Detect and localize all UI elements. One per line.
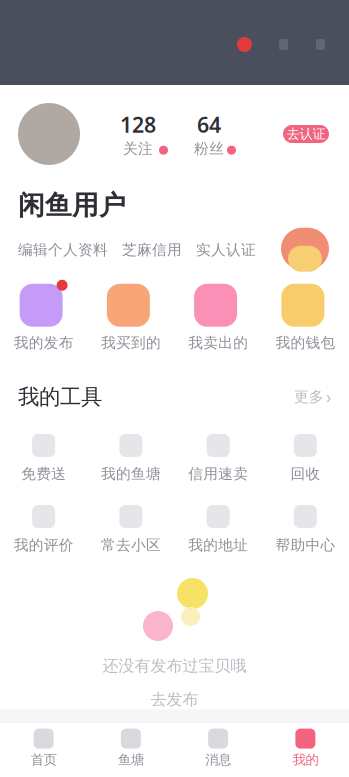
staticText: 去发布: [150, 690, 198, 709]
staticText: 常去小区: [101, 536, 161, 554]
button[interactable]: 首页: [0, 729, 87, 768]
staticText: 实人认证: [196, 241, 256, 259]
staticText: 粉丝: [194, 140, 224, 158]
staticText: 128: [120, 110, 156, 139]
button[interactable]: Profile photo: [18, 103, 80, 165]
button[interactable]: 去认证: [283, 125, 329, 143]
staticText: 信用速卖: [188, 465, 248, 483]
button[interactable]: 回收: [262, 434, 349, 483]
button[interactable]: 帮助中心: [262, 505, 349, 554]
button[interactable]: 128: [120, 110, 168, 158]
staticText: 我的: [292, 752, 318, 768]
button[interactable]: 我的发布: [0, 280, 87, 352]
staticText: 鱼塘: [118, 752, 144, 768]
button[interactable]: 常去小区: [87, 505, 174, 554]
staticText: 我的钱包: [275, 334, 335, 352]
button[interactable]: 我的鱼塘: [87, 434, 174, 483]
button[interactable]: 去发布: [150, 676, 198, 709]
button[interactable]: 我的评价: [0, 505, 87, 554]
staticText: 我的地址: [188, 536, 248, 554]
button[interactable]: 64: [194, 110, 236, 158]
staticText: 免费送: [21, 465, 66, 483]
staticText: 帮助中心: [275, 536, 335, 554]
staticText: 我的鱼塘: [101, 465, 161, 483]
staticText: 闲鱼用户: [18, 189, 126, 222]
staticText: ›: [326, 385, 331, 408]
staticText: 首页: [31, 752, 57, 768]
staticText: 我的工具: [18, 384, 102, 410]
button[interactable]: 鱼塘: [87, 729, 174, 768]
staticText: 还没有发布过宝贝哦: [102, 656, 246, 676]
button[interactable]: 信用速卖: [174, 434, 262, 483]
staticText: 消息: [205, 752, 231, 768]
staticText: 关注: [123, 140, 153, 158]
button[interactable]: Level badge: [279, 228, 331, 272]
staticText: 去认证: [286, 126, 325, 142]
staticText: 回收: [290, 465, 320, 483]
button[interactable]: 我的钱包: [262, 280, 349, 352]
staticText: 我卖出的: [188, 334, 248, 352]
button[interactable]: 我买到的: [87, 280, 174, 352]
button[interactable]: 我的: [262, 729, 349, 768]
button[interactable]: 免费送: [0, 434, 87, 483]
button[interactable]: 我的地址: [174, 505, 262, 554]
staticText: 更多: [294, 388, 324, 406]
staticText: 我的发布: [14, 334, 74, 352]
staticText: 64: [197, 110, 221, 139]
button[interactable]: 更多: [294, 385, 331, 408]
staticText: 编辑个人资料: [18, 241, 108, 259]
button[interactable]: 我卖出的: [174, 280, 262, 352]
staticText: 芝麻信用: [122, 241, 182, 259]
staticText: 我买到的: [101, 334, 161, 352]
button[interactable]: 消息: [174, 729, 262, 768]
staticText: 我的评价: [14, 536, 74, 554]
